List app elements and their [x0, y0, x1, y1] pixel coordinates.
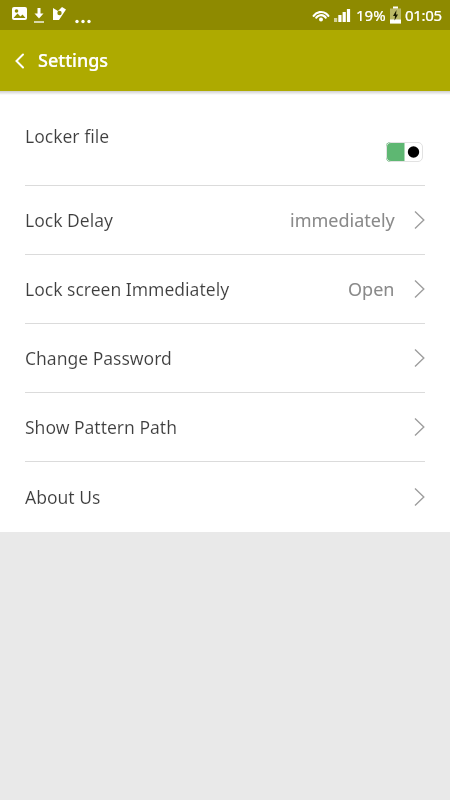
- button[interactable]: Settings: [0, 30, 450, 91]
- staticText: immediately: [290, 208, 395, 233]
- button[interactable]: Change Password: [0, 324, 450, 392]
- button[interactable]: About Us: [0, 462, 450, 532]
- staticText: Settings: [38, 48, 109, 73]
- staticText: 19%: [356, 5, 386, 25]
- button[interactable]: Locker file: [0, 91, 450, 185]
- button[interactable]: Show Pattern Path: [0, 393, 450, 461]
- staticText: Lock Delay: [25, 208, 113, 232]
- staticText: Show Pattern Path: [25, 415, 178, 439]
- staticText: Locker file: [25, 124, 110, 148]
- staticText: Lock screen Immediately: [25, 277, 230, 301]
- staticText: 01:05: [405, 5, 442, 25]
- staticText: About Us: [25, 485, 101, 509]
- button[interactable]: Lock Delay: [0, 186, 450, 254]
- staticText: Change Password: [25, 346, 172, 370]
- staticText: Open: [348, 277, 395, 302]
- button[interactable]: Lock screen Immediately: [0, 255, 450, 323]
